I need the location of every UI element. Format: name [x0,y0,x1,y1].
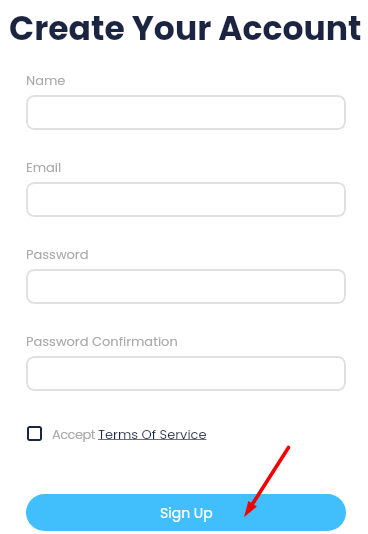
button[interactable]: Password Confirmation [26,356,346,391]
button[interactable]: Password [26,269,346,304]
staticText: Email [26,158,62,176]
button[interactable]: Sign Up [26,494,346,531]
button[interactable]: Terms Of Service [98,425,207,443]
staticText: Password [26,245,89,263]
button[interactable]: Name [26,95,346,130]
button[interactable]: Email [26,182,346,217]
button[interactable]: Accept terms checkbox [27,426,42,441]
staticText: Create Your Account [9,5,362,51]
staticText: Accept [52,425,95,443]
staticText: Password Confirmation [26,332,178,350]
staticText: Sign Up [160,503,213,523]
staticText: Name [26,71,66,89]
